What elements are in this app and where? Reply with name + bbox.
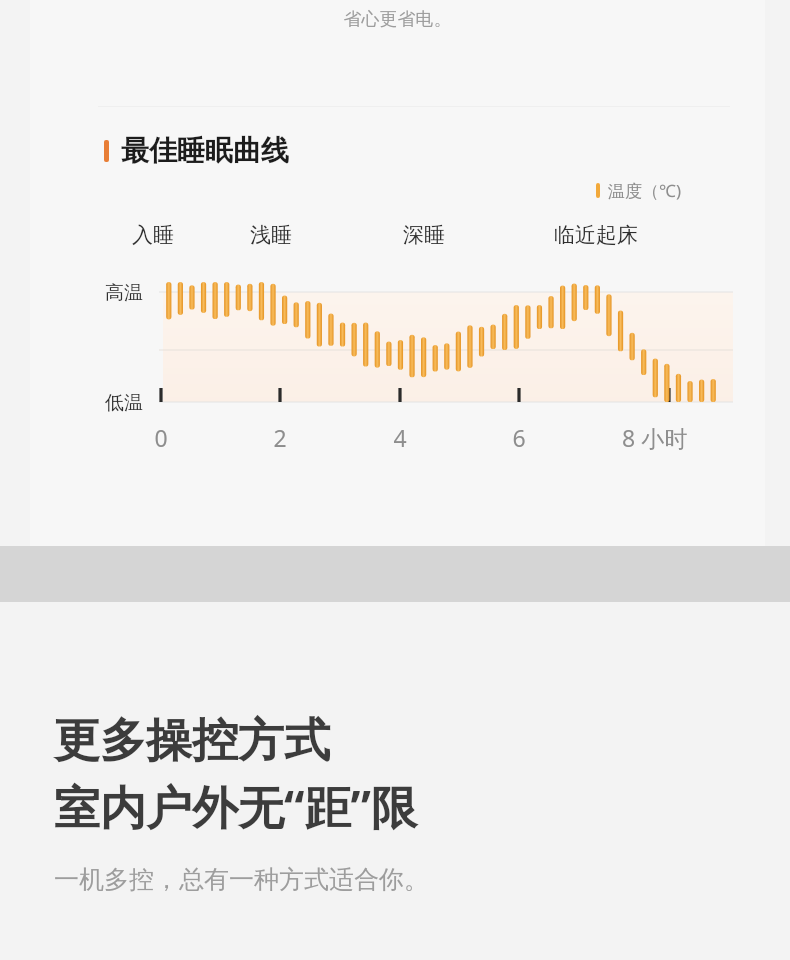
staticText: 低温	[105, 391, 143, 415]
staticText: 高温	[105, 281, 143, 305]
staticText: 8 小时	[622, 422, 688, 453]
button[interactable]: 最佳睡眠曲线	[104, 133, 289, 168]
staticText: 入睡	[93, 222, 213, 248]
button[interactable]: 温度（℃)	[596, 179, 682, 202]
staticText: 4	[370, 422, 430, 453]
staticText: 6	[489, 422, 549, 453]
staticText: 一机多控，总有一种方式适合你。	[54, 864, 429, 895]
staticText: 室内户外无“距”限	[54, 775, 417, 838]
staticText: 浅睡	[211, 222, 331, 248]
other: 睡眠温度曲线图	[153, 248, 733, 408]
staticText: 深睡	[364, 222, 484, 248]
staticText: 省心更省电。	[30, 8, 765, 31]
staticText: 2	[250, 422, 310, 453]
staticText: 0	[131, 422, 191, 453]
staticText: 温度（℃)	[608, 179, 682, 202]
staticText: 最佳睡眠曲线	[121, 133, 289, 168]
staticText: 更多操控方式	[54, 712, 330, 770]
staticText: 临近起床	[536, 222, 656, 248]
